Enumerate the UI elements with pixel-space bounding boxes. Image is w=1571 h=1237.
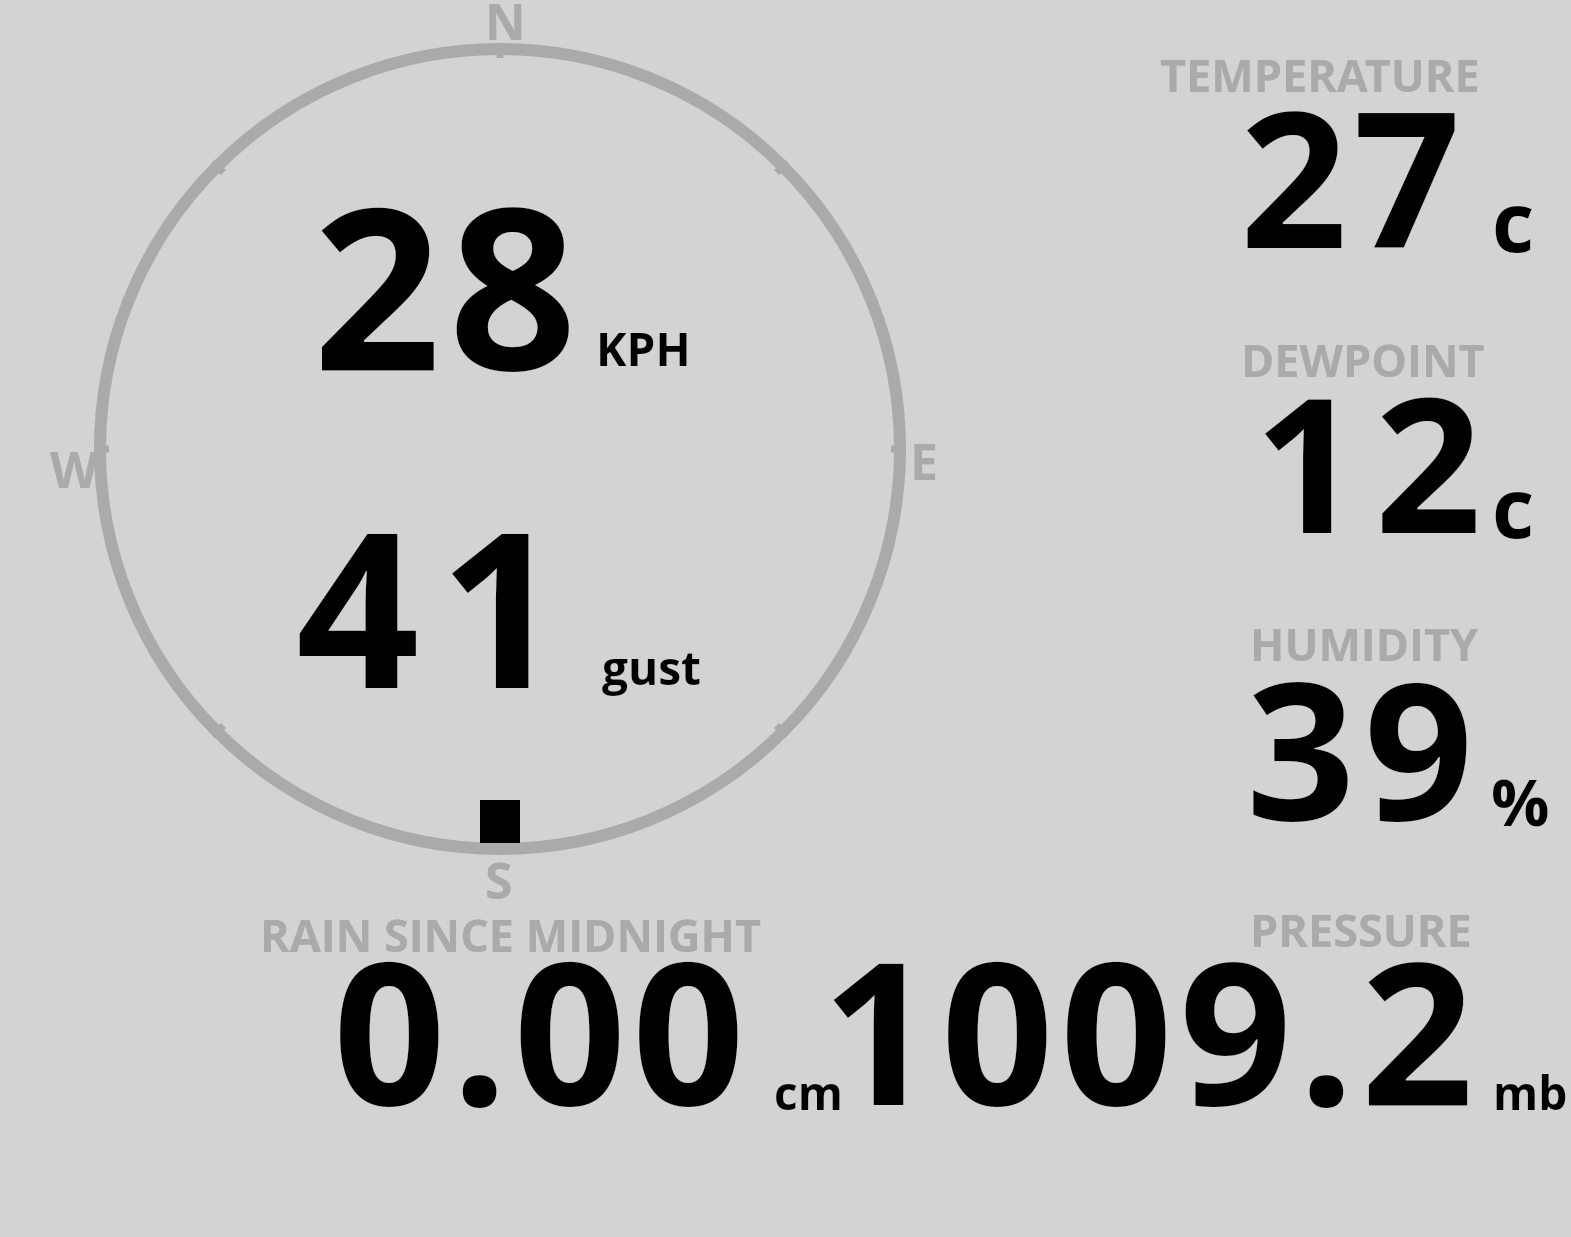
staticText: PRESSURE xyxy=(1250,899,1472,960)
staticText: 1009.2 xyxy=(822,894,1481,1162)
other: Wind direction compass xyxy=(0,0,1571,1237)
staticText: c xyxy=(1492,450,1535,562)
staticText: mb xyxy=(1493,1061,1568,1124)
staticText: N xyxy=(485,0,526,55)
staticText: 41 xyxy=(296,457,583,751)
staticText: HUMIDITY xyxy=(1250,613,1479,674)
staticText: E xyxy=(910,427,939,495)
staticText: 39 xyxy=(1246,616,1483,876)
staticText: TEMPERATURE xyxy=(1160,44,1480,105)
staticText: 0.00 xyxy=(333,894,751,1162)
staticText: 27 xyxy=(1240,47,1467,303)
staticText: gust xyxy=(602,636,702,699)
staticText: 12 xyxy=(1254,333,1496,588)
staticText: % xyxy=(1491,757,1550,846)
staticText: S xyxy=(485,846,513,914)
staticText: c xyxy=(1492,164,1535,276)
staticText: DEWPOINT xyxy=(1241,329,1485,390)
staticText: 28 xyxy=(313,131,585,436)
staticText: W xyxy=(50,435,99,503)
staticText: RAIN SINCE MIDNIGHT xyxy=(260,904,761,965)
staticText: KPH xyxy=(596,317,691,380)
staticText: cm xyxy=(774,1061,843,1124)
